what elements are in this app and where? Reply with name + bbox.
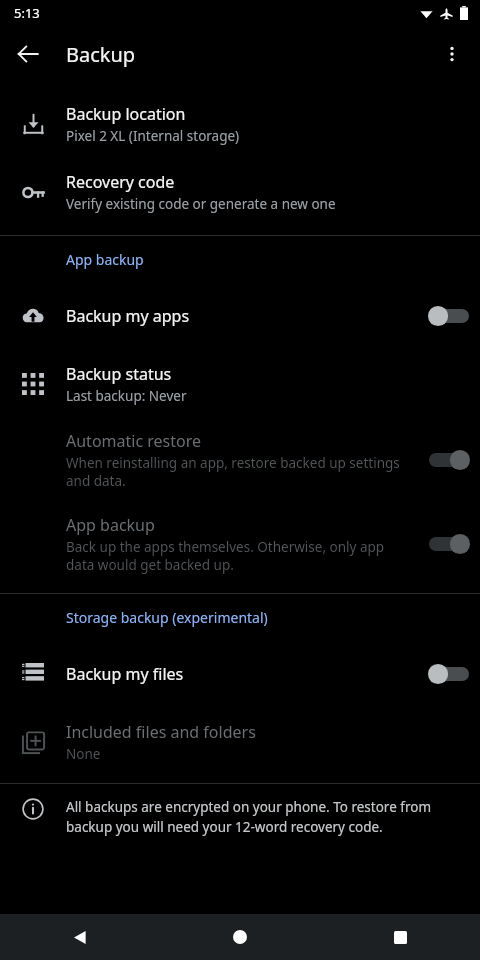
- staticText: Recovery code: [66, 171, 175, 193]
- button[interactable]: Included files and folders: [0, 708, 480, 776]
- staticText: App backup: [66, 250, 144, 269]
- staticText: Included files and folders: [66, 721, 256, 743]
- staticText: Backup my files: [66, 663, 184, 685]
- staticText: Backup status: [66, 363, 172, 385]
- staticText: Automatic restore: [66, 430, 201, 452]
- button[interactable]: Recovery code: [0, 158, 480, 226]
- button[interactable]: Toggle: [427, 448, 471, 472]
- staticText: Backup: [66, 41, 136, 68]
- staticText: None: [66, 745, 101, 763]
- staticText: Last backup: Never: [66, 387, 187, 405]
- staticText: Backup my apps: [66, 305, 190, 327]
- staticText: Storage backup (experimental): [66, 608, 268, 627]
- button[interactable]: Automatic restore: [0, 418, 480, 502]
- button[interactable]: Backup my apps: [0, 282, 480, 350]
- button[interactable]: Toggle: [427, 532, 471, 556]
- button[interactable]: Backup my files: [0, 640, 480, 708]
- button[interactable]: More options: [428, 30, 476, 78]
- staticText: 5:13: [14, 4, 40, 22]
- staticText: All backups are encrypted on your phone.…: [66, 798, 454, 836]
- staticText: Pixel 2 XL (Internal storage): [66, 127, 240, 145]
- button[interactable]: Backup location: [0, 90, 480, 158]
- button[interactable]: Home: [160, 914, 320, 960]
- staticText: Back up the apps themselves. Otherwise, …: [66, 538, 406, 574]
- button[interactable]: Back: [4, 30, 52, 78]
- staticText: Verify existing code or generate a new o…: [66, 195, 336, 213]
- button[interactable]: Recent apps: [320, 914, 480, 960]
- button[interactable]: Back: [0, 914, 160, 960]
- staticText: App backup: [66, 514, 155, 536]
- button[interactable]: Toggle: [427, 304, 471, 328]
- button[interactable]: Toggle: [427, 662, 471, 686]
- staticText: When reinstalling an app, restore backed…: [66, 454, 406, 490]
- staticText: Backup location: [66, 103, 186, 125]
- button[interactable]: Backup status: [0, 350, 480, 418]
- button[interactable]: App backup: [0, 502, 480, 586]
